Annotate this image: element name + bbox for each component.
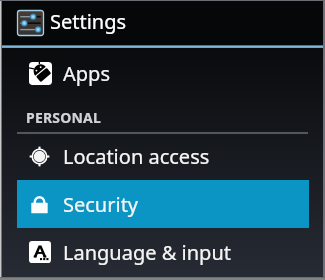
- button[interactable]: Security: [0, 180, 325, 228]
- staticText: PERSONAL: [26, 108, 102, 127]
- staticText: Language & input: [63, 239, 231, 266]
- button[interactable]: Location access: [0, 132, 325, 180]
- button[interactable]: Apps: [0, 48, 325, 98]
- staticText: Apps: [63, 60, 110, 87]
- other: Settings: [15, 8, 46, 38]
- staticText: Security: [63, 191, 139, 218]
- staticText: Settings: [50, 8, 127, 35]
- button[interactable]: Language & input: [0, 228, 325, 276]
- staticText: Location access: [63, 143, 210, 170]
